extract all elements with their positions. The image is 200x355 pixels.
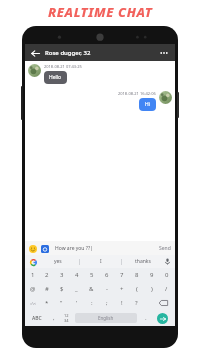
button[interactable]: yes bbox=[37, 255, 79, 268]
button[interactable]: ( bbox=[129, 282, 144, 296]
staticText: English bbox=[98, 315, 114, 321]
button[interactable]: More options bbox=[157, 46, 171, 60]
button[interactable]: 6 bbox=[99, 268, 114, 282]
staticText: 5 bbox=[90, 271, 94, 279]
button[interactable]: # bbox=[40, 282, 54, 296]
button[interactable]: Send bbox=[155, 243, 175, 254]
button[interactable]: Emoji bbox=[28, 244, 37, 253]
staticText: 2018-08-21 16:42:06 bbox=[118, 91, 156, 96]
staticText: + bbox=[120, 285, 124, 293]
button[interactable]: 3 bbox=[54, 268, 69, 282]
button[interactable]: Voice input bbox=[163, 257, 172, 266]
button[interactable]: Enter bbox=[152, 311, 173, 325]
button[interactable]: " bbox=[54, 296, 69, 310]
staticText: _ bbox=[75, 285, 78, 293]
staticText: 2018-08-21 07:43:25 bbox=[44, 64, 82, 69]
button[interactable]: 4 bbox=[69, 268, 84, 282]
button[interactable]: , bbox=[47, 311, 60, 325]
staticText: Hi bbox=[145, 101, 150, 108]
button[interactable]: $ bbox=[54, 282, 69, 296]
button[interactable]: 7 bbox=[114, 268, 129, 282]
button[interactable]: ; bbox=[99, 296, 114, 310]
staticText: ABC bbox=[32, 315, 42, 322]
staticText: ! bbox=[121, 299, 123, 307]
button[interactable]: thanks bbox=[122, 255, 163, 268]
button[interactable]: ABC bbox=[27, 311, 47, 325]
button[interactable]: 8 bbox=[129, 268, 144, 282]
button[interactable]: + bbox=[114, 282, 129, 296]
staticText: 34 bbox=[64, 318, 69, 323]
staticText: yes bbox=[54, 258, 62, 265]
staticText: / bbox=[165, 285, 168, 293]
button[interactable]: 5 bbox=[84, 268, 99, 282]
button[interactable]: 9 bbox=[144, 268, 159, 282]
staticText: . bbox=[145, 314, 147, 322]
button[interactable]: ) bbox=[144, 282, 159, 296]
button[interactable]: Backspace bbox=[153, 296, 174, 310]
button[interactable]: - bbox=[99, 282, 114, 296]
button[interactable]: & bbox=[84, 282, 99, 296]
button[interactable]: English bbox=[75, 313, 137, 323]
staticText: 8 bbox=[135, 271, 139, 279]
staticText: , bbox=[53, 314, 55, 322]
button[interactable]: Hello bbox=[44, 71, 67, 84]
staticText: I bbox=[100, 258, 102, 265]
button[interactable]: Google bbox=[29, 258, 37, 266]
button[interactable]: * bbox=[40, 296, 54, 310]
staticText: " bbox=[60, 299, 63, 307]
staticText: Hello bbox=[49, 74, 62, 81]
staticText: ; bbox=[106, 299, 108, 307]
staticText: 7 bbox=[120, 271, 124, 279]
staticText: Send bbox=[159, 245, 171, 252]
staticText: REALTIME CHAT bbox=[48, 3, 153, 21]
staticText: Rose dugger, 32 bbox=[45, 49, 91, 57]
staticText: @ bbox=[30, 285, 36, 293]
staticText: - bbox=[106, 285, 108, 293]
button[interactable]: : bbox=[84, 296, 99, 310]
button[interactable]: Back bbox=[28, 46, 42, 60]
staticText: # bbox=[45, 285, 49, 293]
staticText: 4 bbox=[75, 271, 79, 279]
staticText: * bbox=[45, 299, 49, 307]
staticText: & bbox=[89, 285, 94, 293]
button[interactable]: 1 bbox=[26, 268, 40, 282]
button[interactable]: ? bbox=[129, 296, 144, 310]
staticText: 6 bbox=[105, 271, 109, 279]
staticText: $ bbox=[60, 285, 64, 293]
staticText: =\< bbox=[30, 301, 37, 306]
button[interactable]: 2 bbox=[40, 268, 54, 282]
staticText: 12 bbox=[64, 313, 69, 318]
staticText: ) bbox=[151, 285, 153, 293]
button[interactable]: ! bbox=[114, 296, 129, 310]
staticText: 0 bbox=[165, 271, 169, 279]
button[interactable]: More symbols bbox=[26, 296, 40, 310]
staticText: 2 bbox=[45, 271, 49, 279]
button[interactable]: Hi bbox=[139, 98, 156, 111]
button[interactable]: 0 bbox=[159, 268, 174, 282]
staticText: 3 bbox=[60, 271, 64, 279]
button[interactable]: I bbox=[80, 255, 121, 268]
staticText: How are you ??| bbox=[55, 245, 93, 252]
staticText: 1 bbox=[31, 271, 35, 279]
staticText: ? bbox=[135, 299, 138, 307]
button[interactable]: Numbers bbox=[60, 311, 73, 325]
staticText: : bbox=[91, 299, 93, 307]
button[interactable]: ' bbox=[69, 296, 84, 310]
button[interactable]: Camera bbox=[40, 244, 49, 253]
button[interactable]: . bbox=[139, 311, 152, 325]
button[interactable]: / bbox=[159, 282, 174, 296]
staticText: ( bbox=[136, 285, 138, 293]
button[interactable]: _ bbox=[69, 282, 84, 296]
button[interactable]: @ bbox=[26, 282, 40, 296]
staticText: thanks bbox=[135, 258, 151, 265]
staticText: ' bbox=[76, 299, 78, 307]
staticText: 9 bbox=[150, 271, 154, 279]
